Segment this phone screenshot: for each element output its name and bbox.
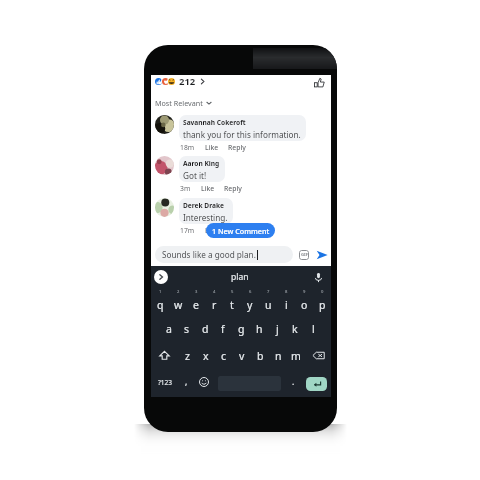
button[interactable]: GIF (297, 248, 310, 261)
staticText: 5 (231, 289, 234, 295)
staticText: b (257, 349, 264, 363)
button[interactable]: l (304, 315, 322, 342)
button[interactable]: Reply (228, 226, 246, 235)
button[interactable]: 5 (223, 288, 241, 315)
button[interactable]: g (232, 315, 250, 342)
staticText: 18m (180, 143, 195, 152)
staticText: 6 (249, 289, 252, 295)
staticText: v (239, 349, 245, 363)
staticText: Sounds like a good plan. (162, 249, 256, 260)
staticText: 0 (321, 289, 324, 295)
staticText: a (166, 322, 172, 336)
button[interactable]: s (178, 315, 196, 342)
button[interactable]: n (269, 342, 287, 369)
button[interactable]: m (287, 342, 305, 369)
staticText: 7 (267, 289, 270, 295)
staticText: u (265, 298, 272, 312)
button[interactable]: Expand toolbar (154, 270, 168, 284)
button[interactable]: 2 (169, 288, 187, 315)
staticText: Reply (228, 226, 246, 235)
staticText: n (275, 349, 282, 363)
staticText: 8 (285, 289, 288, 295)
staticText: Reply (228, 143, 246, 152)
staticText: Like (201, 184, 215, 193)
staticText: d (202, 322, 209, 336)
button[interactable]: Shift (151, 342, 178, 369)
staticText: Derek Drake (183, 201, 224, 210)
staticText: m (291, 349, 301, 363)
button[interactable]: Savannah Cokeroft (155, 115, 326, 152)
button[interactable]: Sounds like a good plan. (155, 246, 293, 263)
button[interactable]: 1 New Comment (206, 223, 275, 238)
button[interactable]: c (215, 342, 233, 369)
button[interactable]: 8 (277, 288, 295, 315)
staticText: plan (231, 271, 249, 283)
button[interactable]: Most Relevant (155, 97, 212, 108)
button[interactable]: j (268, 315, 286, 342)
button[interactable]: 1 (151, 288, 169, 315)
staticText: 1 New Comment (212, 226, 270, 236)
button[interactable]: Like (205, 143, 219, 152)
button[interactable]: d (196, 315, 214, 342)
staticText: . (292, 376, 295, 388)
staticText: Savannah Cokeroft (183, 118, 246, 127)
button[interactable]: Like (205, 226, 219, 235)
button[interactable]: Like (201, 184, 215, 193)
button[interactable]: 9 (295, 288, 313, 315)
button[interactable]: Backspace (305, 342, 331, 369)
button[interactable]: ?123 (153, 370, 176, 394)
staticText: 212 (179, 75, 196, 88)
button[interactable]: b (251, 342, 269, 369)
button[interactable]: Aaron King (155, 156, 326, 193)
staticText: 4 (213, 289, 216, 295)
button[interactable]: 3 (187, 288, 205, 315)
button[interactable]: 212 (154, 75, 206, 88)
staticText: Like (205, 226, 219, 235)
button[interactable]: x (197, 342, 215, 369)
staticText: l (312, 322, 315, 336)
button[interactable]: Reply (228, 143, 246, 152)
staticText: , (185, 376, 188, 388)
staticText: Got it! (183, 170, 207, 181)
staticText: w (174, 298, 183, 312)
button[interactable]: 0 (313, 288, 331, 315)
button[interactable]: k (286, 315, 304, 342)
button[interactable]: . (287, 370, 300, 394)
staticText: g (238, 322, 245, 336)
button[interactable]: v (233, 342, 251, 369)
staticText: e (193, 298, 199, 312)
button[interactable]: Like (313, 76, 325, 88)
button[interactable]: Derek Drake (155, 198, 326, 235)
button[interactable]: Voice input (312, 271, 325, 284)
staticText: Aaron King (183, 159, 220, 168)
button[interactable]: 4 (205, 288, 223, 315)
staticText: 2 (177, 289, 180, 295)
button[interactable]: Enter (306, 377, 327, 391)
staticText: thank you for this information. (183, 129, 301, 140)
button[interactable]: Send (315, 248, 328, 261)
button[interactable]: 6 (241, 288, 259, 315)
staticText: Like (205, 143, 219, 152)
button[interactable]: h (250, 315, 268, 342)
staticText: s (184, 322, 190, 336)
button[interactable]: Emoji (196, 370, 212, 394)
staticText: f (221, 322, 225, 336)
staticText: 1 (159, 289, 162, 295)
button[interactable]: , (176, 370, 196, 394)
staticText: z (185, 349, 190, 363)
button[interactable]: Reply (224, 184, 242, 193)
staticText: p (319, 298, 326, 312)
button[interactable]: 7 (259, 288, 277, 315)
button[interactable]: z (178, 342, 197, 369)
button[interactable]: f (214, 315, 232, 342)
staticText: j (276, 322, 279, 336)
staticText: Most Relevant (155, 98, 203, 108)
button[interactable]: a (160, 315, 178, 342)
staticText: GIF (301, 252, 308, 258)
staticText: c (221, 349, 227, 363)
staticText: Interesting. (183, 212, 228, 223)
staticText: q (157, 298, 164, 312)
staticText: Reply (224, 184, 242, 193)
staticText: h (256, 322, 263, 336)
